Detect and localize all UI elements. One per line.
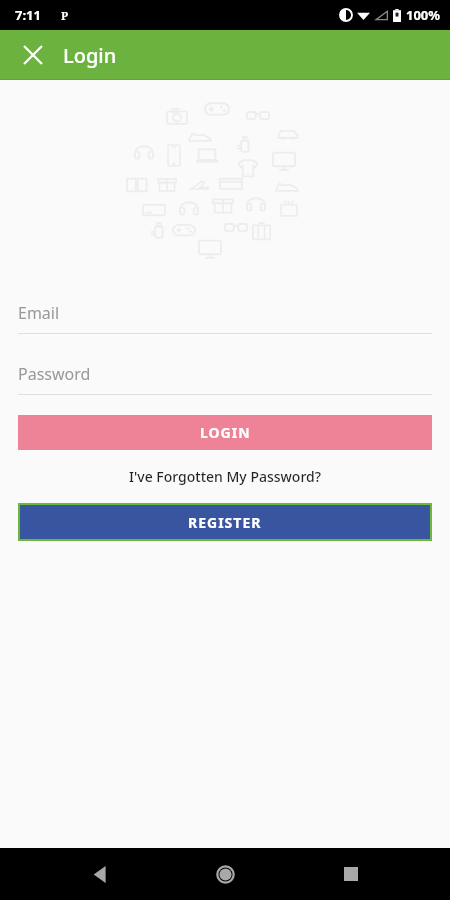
staticText: P xyxy=(61,8,69,23)
button[interactable]: Home xyxy=(199,848,251,900)
staticText: LOGIN xyxy=(200,423,251,442)
button[interactable]: I've Forgotten My Password? xyxy=(0,467,450,486)
button[interactable]: Back xyxy=(74,848,126,900)
button[interactable]: LOGIN xyxy=(18,415,432,450)
staticText: Password xyxy=(18,363,91,385)
staticText: 7:11 xyxy=(15,6,41,24)
staticText: I've Forgotten My Password? xyxy=(129,467,321,486)
staticText: Login xyxy=(63,42,117,69)
staticText: REGISTER xyxy=(188,513,262,532)
button[interactable]: Close xyxy=(16,38,50,72)
button[interactable]: Password xyxy=(18,363,432,395)
staticText: 100% xyxy=(406,6,441,24)
button[interactable]: REGISTER xyxy=(20,505,430,539)
staticText: Email xyxy=(18,302,60,324)
button[interactable]: Recent apps xyxy=(325,848,377,900)
button[interactable]: Email xyxy=(18,302,432,334)
